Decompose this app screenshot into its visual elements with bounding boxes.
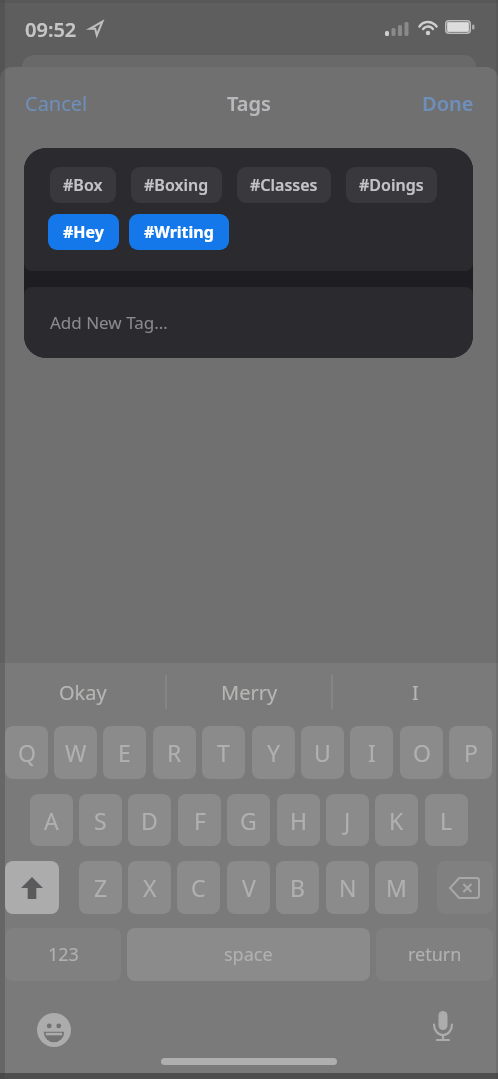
button[interactable]: R [153, 726, 196, 779]
button[interactable]: C [177, 861, 220, 914]
staticText: M [386, 872, 407, 903]
staticText: space [224, 942, 273, 967]
staticText: S [94, 805, 107, 836]
button[interactable]: Q [5, 726, 48, 779]
staticText: X [143, 872, 157, 903]
button[interactable]: return [376, 928, 493, 981]
staticText: Z [94, 872, 108, 903]
staticText: #Boxing [144, 174, 209, 196]
button[interactable] [432, 1011, 454, 1043]
staticText: 09:52 [25, 16, 77, 43]
staticText: K [389, 805, 404, 836]
staticText: I [412, 679, 419, 706]
staticText: #Classes [250, 174, 318, 196]
staticText: W [65, 737, 87, 768]
staticText: I [368, 737, 376, 768]
staticText: D [141, 805, 158, 836]
staticText: L [440, 805, 453, 836]
button[interactable]: I [332, 671, 498, 713]
button[interactable]: #Writing [129, 214, 229, 250]
button[interactable]: M [375, 861, 418, 914]
button[interactable]: P [449, 726, 492, 779]
button[interactable]: A [30, 794, 73, 846]
staticText: B [290, 872, 305, 903]
staticText: Cancel [25, 90, 88, 117]
button[interactable]: space [127, 928, 370, 981]
button[interactable]: #Hey [48, 214, 119, 250]
staticText: C [191, 872, 206, 903]
button[interactable]: Cancel [25, 90, 88, 117]
button[interactable]: Done [422, 90, 474, 117]
staticText: Q [18, 737, 36, 768]
button[interactable]: J [326, 794, 369, 846]
button[interactable]: #Box [50, 167, 116, 203]
staticText: Y [267, 737, 281, 768]
staticText: Merry [221, 679, 278, 706]
button[interactable]: #Doings [346, 167, 437, 203]
staticText: Okay [59, 679, 107, 706]
button[interactable]: W [54, 726, 97, 779]
button[interactable]: Merry [166, 671, 332, 713]
button[interactable]: #Boxing [131, 167, 222, 203]
button[interactable]: V [227, 861, 270, 914]
button[interactable]: L [425, 794, 468, 846]
button[interactable]: Add New Tag… [24, 287, 473, 358]
staticText: R [167, 737, 182, 768]
button[interactable] [37, 1013, 71, 1047]
staticText: F [194, 805, 206, 836]
button[interactable]: X [128, 861, 171, 914]
button[interactable]: Y [252, 726, 295, 779]
button[interactable]: Okay [0, 671, 166, 713]
button[interactable]: N [326, 861, 369, 914]
button[interactable]: D [128, 794, 171, 846]
button[interactable]: S [79, 794, 122, 846]
staticText: 123 [48, 942, 79, 967]
button[interactable]: I [350, 726, 393, 779]
button[interactable]: F [178, 794, 221, 846]
staticText: #Hey [63, 221, 104, 243]
staticText: return [408, 942, 462, 967]
staticText: J [344, 805, 351, 836]
button[interactable] [5, 861, 59, 914]
staticText: #Writing [144, 221, 214, 243]
button[interactable] [437, 861, 493, 914]
staticText: U [314, 737, 331, 768]
button[interactable]: 123 [5, 928, 121, 981]
button[interactable]: G [227, 794, 270, 846]
button[interactable]: H [277, 794, 320, 846]
button[interactable]: T [202, 726, 245, 779]
button[interactable]: Z [79, 861, 122, 914]
button[interactable]: #Classes [237, 167, 331, 203]
button[interactable]: U [301, 726, 344, 779]
staticText: Tags [227, 90, 271, 117]
staticText: T [217, 737, 230, 768]
staticText: G [240, 805, 257, 836]
button[interactable]: K [375, 794, 418, 846]
staticText: V [242, 872, 256, 903]
staticText: Done [422, 90, 474, 117]
staticText: #Doings [359, 174, 424, 196]
button[interactable]: O [400, 726, 443, 779]
button[interactable]: B [276, 861, 319, 914]
staticText: H [290, 805, 308, 836]
staticText: A [44, 805, 59, 836]
staticText: #Box [63, 174, 103, 196]
staticText: Add New Tag… [50, 311, 168, 334]
staticText: N [339, 872, 357, 903]
button[interactable]: E [103, 726, 146, 779]
staticText: E [118, 737, 131, 768]
staticText: O [413, 737, 431, 768]
staticText: P [464, 737, 478, 768]
